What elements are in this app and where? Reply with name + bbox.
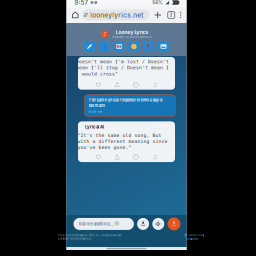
staticText: mean I'll stop / Doesn't mean I [76, 65, 169, 70]
staticText: ♫ [102, 43, 107, 50]
button[interactable]: Speaker [152, 218, 164, 230]
button[interactable]: Microphone [137, 218, 149, 230]
staticText: ♪ [103, 31, 106, 37]
button[interactable]: Ask me anything... I'll [73, 218, 134, 230]
button[interactable]: Voice chat [167, 217, 180, 230]
button[interactable]: looneylyrics.net [82, 9, 149, 21]
staticText: ♫ [152, 81, 157, 88]
staticText: Ask me anything... I'll [78, 221, 118, 227]
staticText: Voice chat [188, 234, 204, 237]
button[interactable]: Tabs [166, 9, 176, 20]
button[interactable]: Home [69, 8, 81, 21]
staticText: The same lyrical response in even a day … [88, 98, 162, 102]
button[interactable]: Menu [177, 9, 185, 20]
staticText: enabled [186, 237, 198, 240]
button[interactable]: Tool 2 [99, 41, 110, 52]
staticText: Chat with a Looney Lyrical AI [112, 35, 152, 39]
staticText: 9:57 [74, 0, 88, 6]
staticText: 56% [152, 0, 163, 5]
button[interactable]: Tool 1 [84, 41, 95, 52]
staticText: creative interpretations [58, 237, 91, 240]
button[interactable]: Tool 4 [128, 41, 139, 52]
staticText: Looney Lyrics [115, 29, 148, 35]
staticText: ♫ [152, 154, 157, 160]
staticText: you've been gone." [77, 145, 131, 150]
staticText: 2 [170, 12, 173, 18]
staticText: Doesn't mean I'm lost / Doesn't [76, 59, 169, 64]
staticText: with a different meaning since [77, 139, 167, 144]
staticText: ? [147, 42, 151, 51]
staticText: looneylyrics.net [90, 11, 143, 19]
staticText: would cross" [82, 71, 118, 76]
staticText: 10:08 AM [88, 110, 101, 113]
button[interactable]: New tab [153, 9, 162, 20]
staticText: This is a conversation with AI - Respons… [58, 234, 122, 237]
button[interactable]: Tool 3 [114, 41, 125, 52]
button[interactable]: Tool 5 [143, 41, 154, 52]
staticText: too much [88, 103, 104, 108]
staticText: Lyrical AI [85, 124, 104, 130]
button[interactable]: Tool 6 [158, 41, 169, 52]
staticText: "It's the same old song, But [77, 133, 161, 138]
